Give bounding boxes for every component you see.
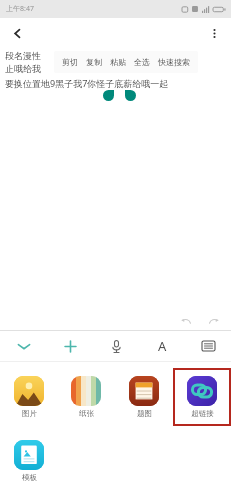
button[interactable]: 图片 [11, 373, 47, 421]
staticText: 纸张 [79, 409, 94, 418]
staticText: A [158, 337, 167, 355]
button[interactable]: Undo [175, 313, 197, 329]
staticText: 段名漫性 [5, 50, 41, 61]
button[interactable]: Back [4, 20, 30, 46]
staticText: 题图 [137, 409, 152, 418]
button[interactable]: 纸张 [68, 373, 104, 421]
button[interactable]: More options [201, 20, 227, 46]
button[interactable]: 快速搜索 [154, 55, 194, 69]
button[interactable]: Collapse keyboard [0, 331, 47, 361]
staticText: 止哦给我 [5, 63, 41, 74]
staticText: 图片 [22, 409, 37, 418]
staticText: 超链接 [191, 409, 214, 418]
staticText: 模板 [22, 473, 37, 482]
button[interactable]: Redo [203, 313, 225, 329]
button[interactable]: 模板 [11, 437, 47, 485]
staticText: 粘贴 [110, 57, 126, 67]
button[interactable]: 超链接 [184, 373, 220, 421]
button[interactable]: Insert [47, 331, 93, 361]
staticText: 剪切 [62, 57, 78, 67]
staticText: 上午8:47 [6, 4, 34, 14]
button[interactable]: 粘贴 [106, 55, 130, 69]
button[interactable]: 题图 [126, 373, 162, 421]
button[interactable]: Keyboard [185, 331, 231, 361]
staticText: 快速搜索 [158, 57, 190, 67]
button[interactable]: Voice input [93, 331, 139, 361]
staticText: 要换位置地9黑子我7你怪子底薪给哦一起 [5, 77, 169, 89]
staticText: 全选 [134, 57, 150, 67]
staticText: 复制 [86, 57, 102, 67]
button[interactable]: 剪切 [58, 55, 82, 69]
button[interactable]: Text format [139, 331, 185, 361]
button[interactable]: 全选 [130, 55, 154, 69]
button[interactable]: 复制 [82, 55, 106, 69]
